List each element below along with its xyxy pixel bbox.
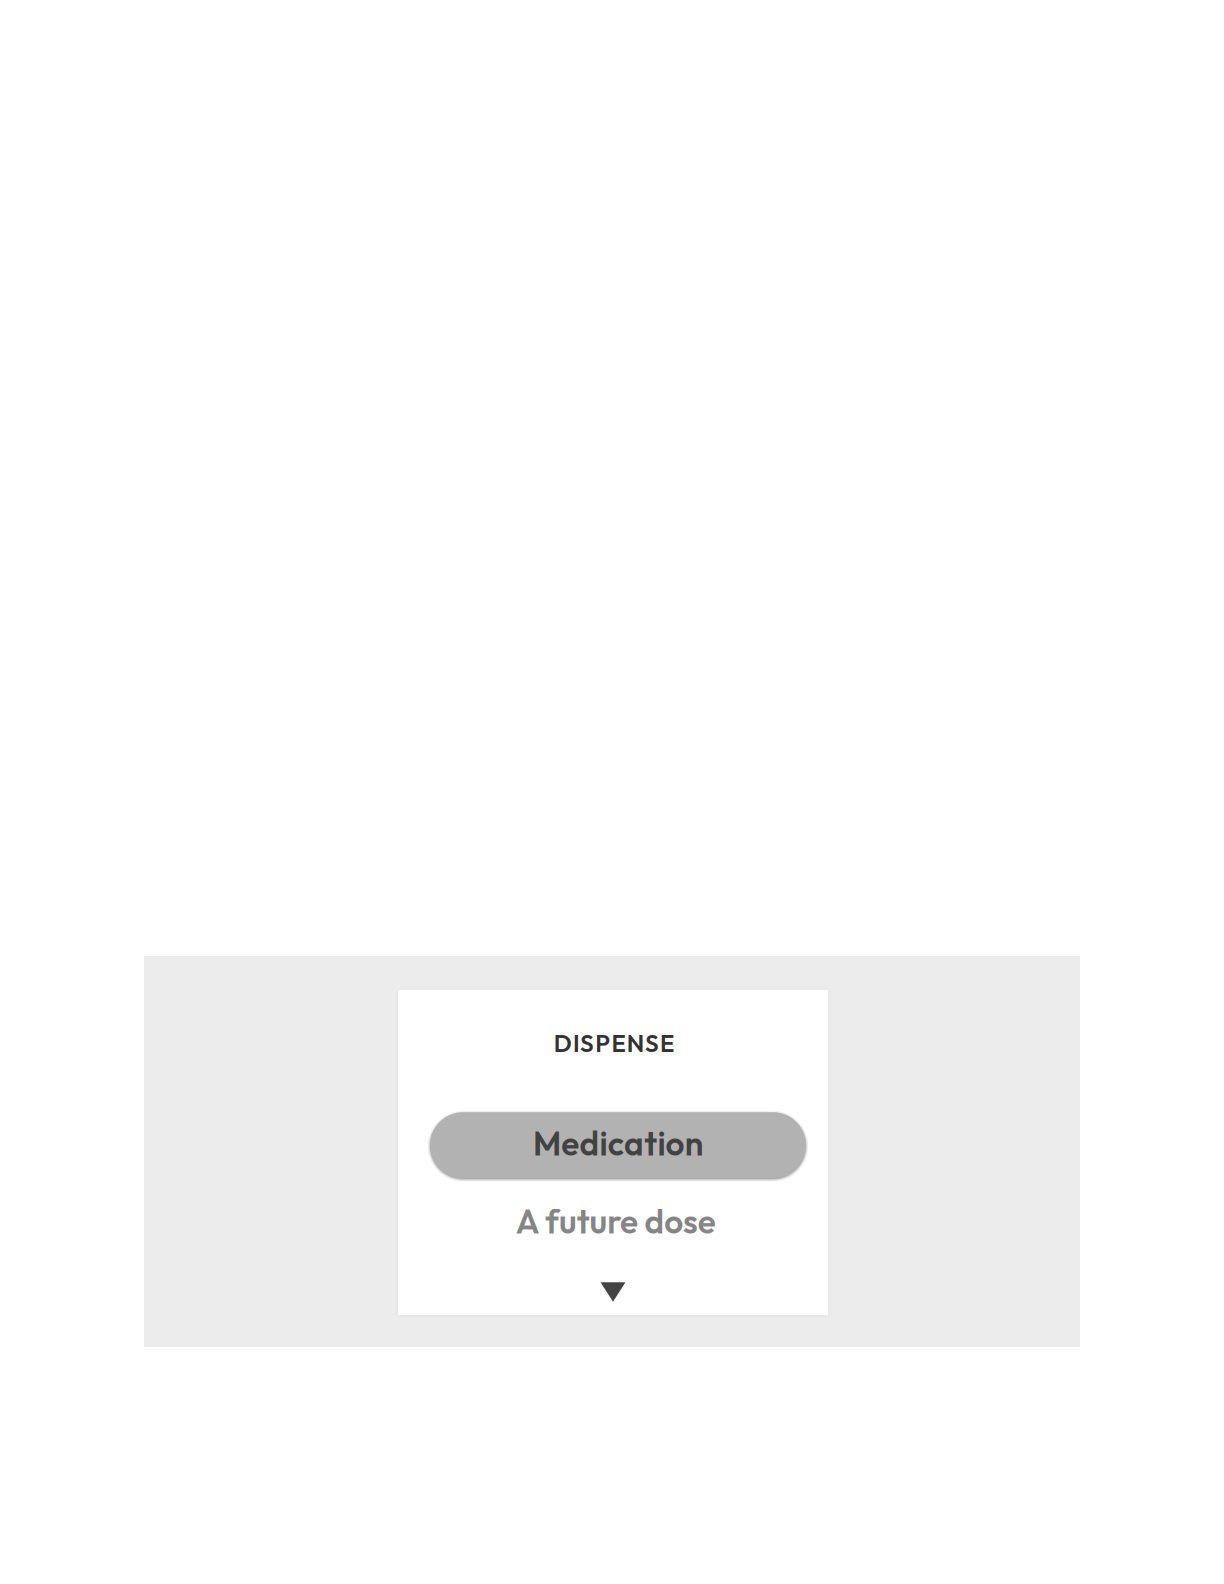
staticText: DISPENSE	[554, 1028, 680, 1058]
staticText: Medication	[533, 1122, 711, 1164]
button[interactable]: Show more doses	[600, 1282, 625, 1302]
staticText: A future dose	[516, 1200, 722, 1242]
button[interactable]: Medication	[430, 1112, 806, 1178]
